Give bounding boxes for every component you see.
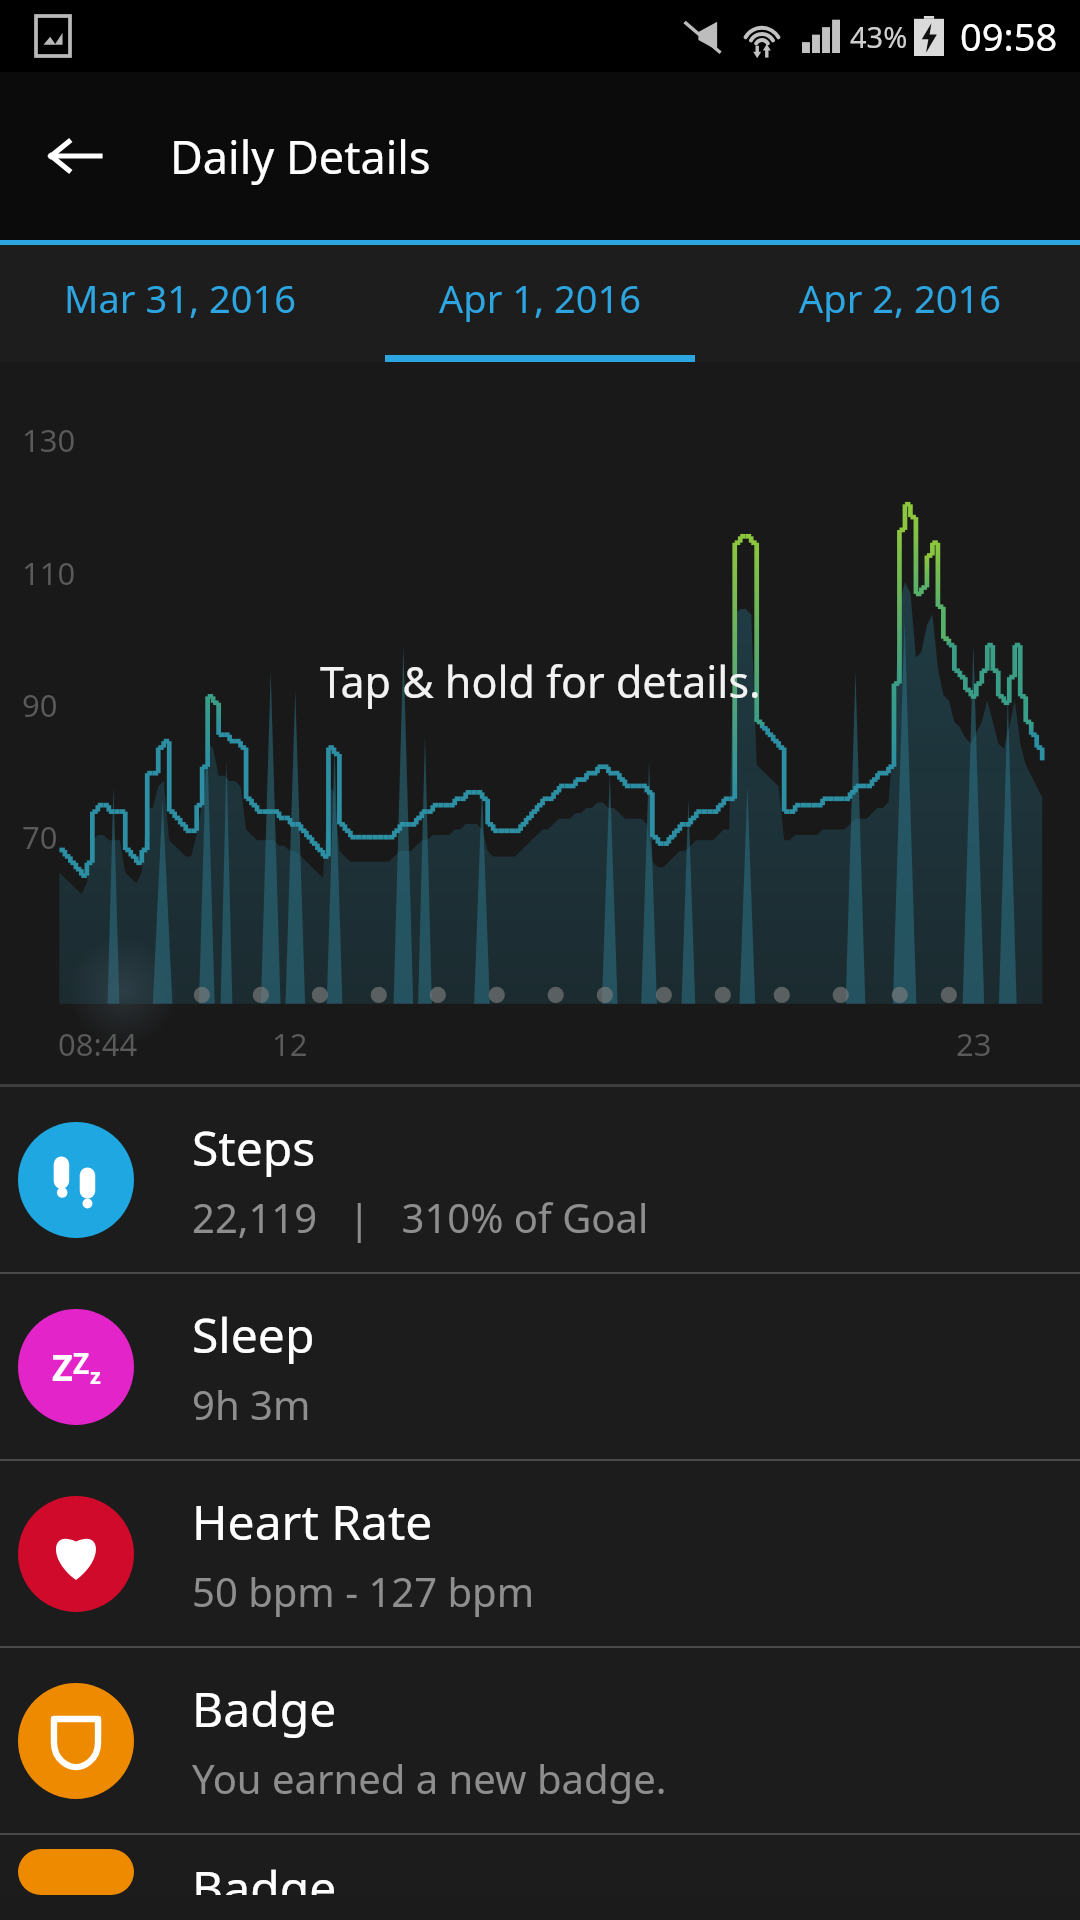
staticText: 09:58: [960, 10, 1058, 62]
button[interactable]: Badge: [0, 1835, 1080, 1895]
button[interactable]: Apr 2, 2016: [720, 245, 1080, 362]
staticText: 12: [272, 1023, 308, 1065]
button[interactable]: Mar 31, 2016: [0, 245, 360, 362]
staticText: Heart Rate: [192, 1489, 433, 1554]
staticText: 43%: [850, 17, 908, 56]
staticText: Badge: [192, 1676, 337, 1741]
button[interactable]: Apr 1, 2016: [360, 245, 720, 362]
staticText: Z: [52, 1343, 73, 1392]
staticText: 9h 3m: [192, 1377, 311, 1431]
staticText: 08:44: [58, 1023, 138, 1065]
staticText: z: [90, 1360, 101, 1390]
staticText: Apr 1, 2016: [360, 272, 720, 324]
button[interactable]: Back: [36, 118, 112, 194]
staticText: Daily Details: [170, 126, 431, 187]
staticText: 90: [22, 684, 58, 726]
staticText: 22,119 | 310% of Goal: [192, 1190, 649, 1244]
button[interactable]: 130: [0, 362, 1080, 1087]
staticText: 110: [22, 552, 76, 594]
staticText: 50 bpm - 127 bpm: [192, 1564, 535, 1618]
staticText: 130: [22, 419, 76, 461]
staticText: Badge: [192, 1855, 337, 1895]
staticText: 23: [956, 1023, 992, 1065]
staticText: Tap & hold for details.: [320, 652, 761, 711]
staticText: Steps: [192, 1115, 316, 1180]
button[interactable]: Heart Rate: [0, 1461, 1080, 1646]
staticText: Apr 2, 2016: [720, 272, 1080, 324]
button[interactable]: Z: [0, 1274, 1080, 1459]
button[interactable]: Steps: [0, 1087, 1080, 1272]
button[interactable]: Badge: [0, 1648, 1080, 1833]
staticText: Z: [73, 1344, 90, 1382]
staticText: You earned a new badge.: [192, 1751, 667, 1805]
staticText: 70: [22, 816, 58, 858]
staticText: Sleep: [192, 1302, 315, 1367]
staticText: Mar 31, 2016: [0, 272, 360, 324]
